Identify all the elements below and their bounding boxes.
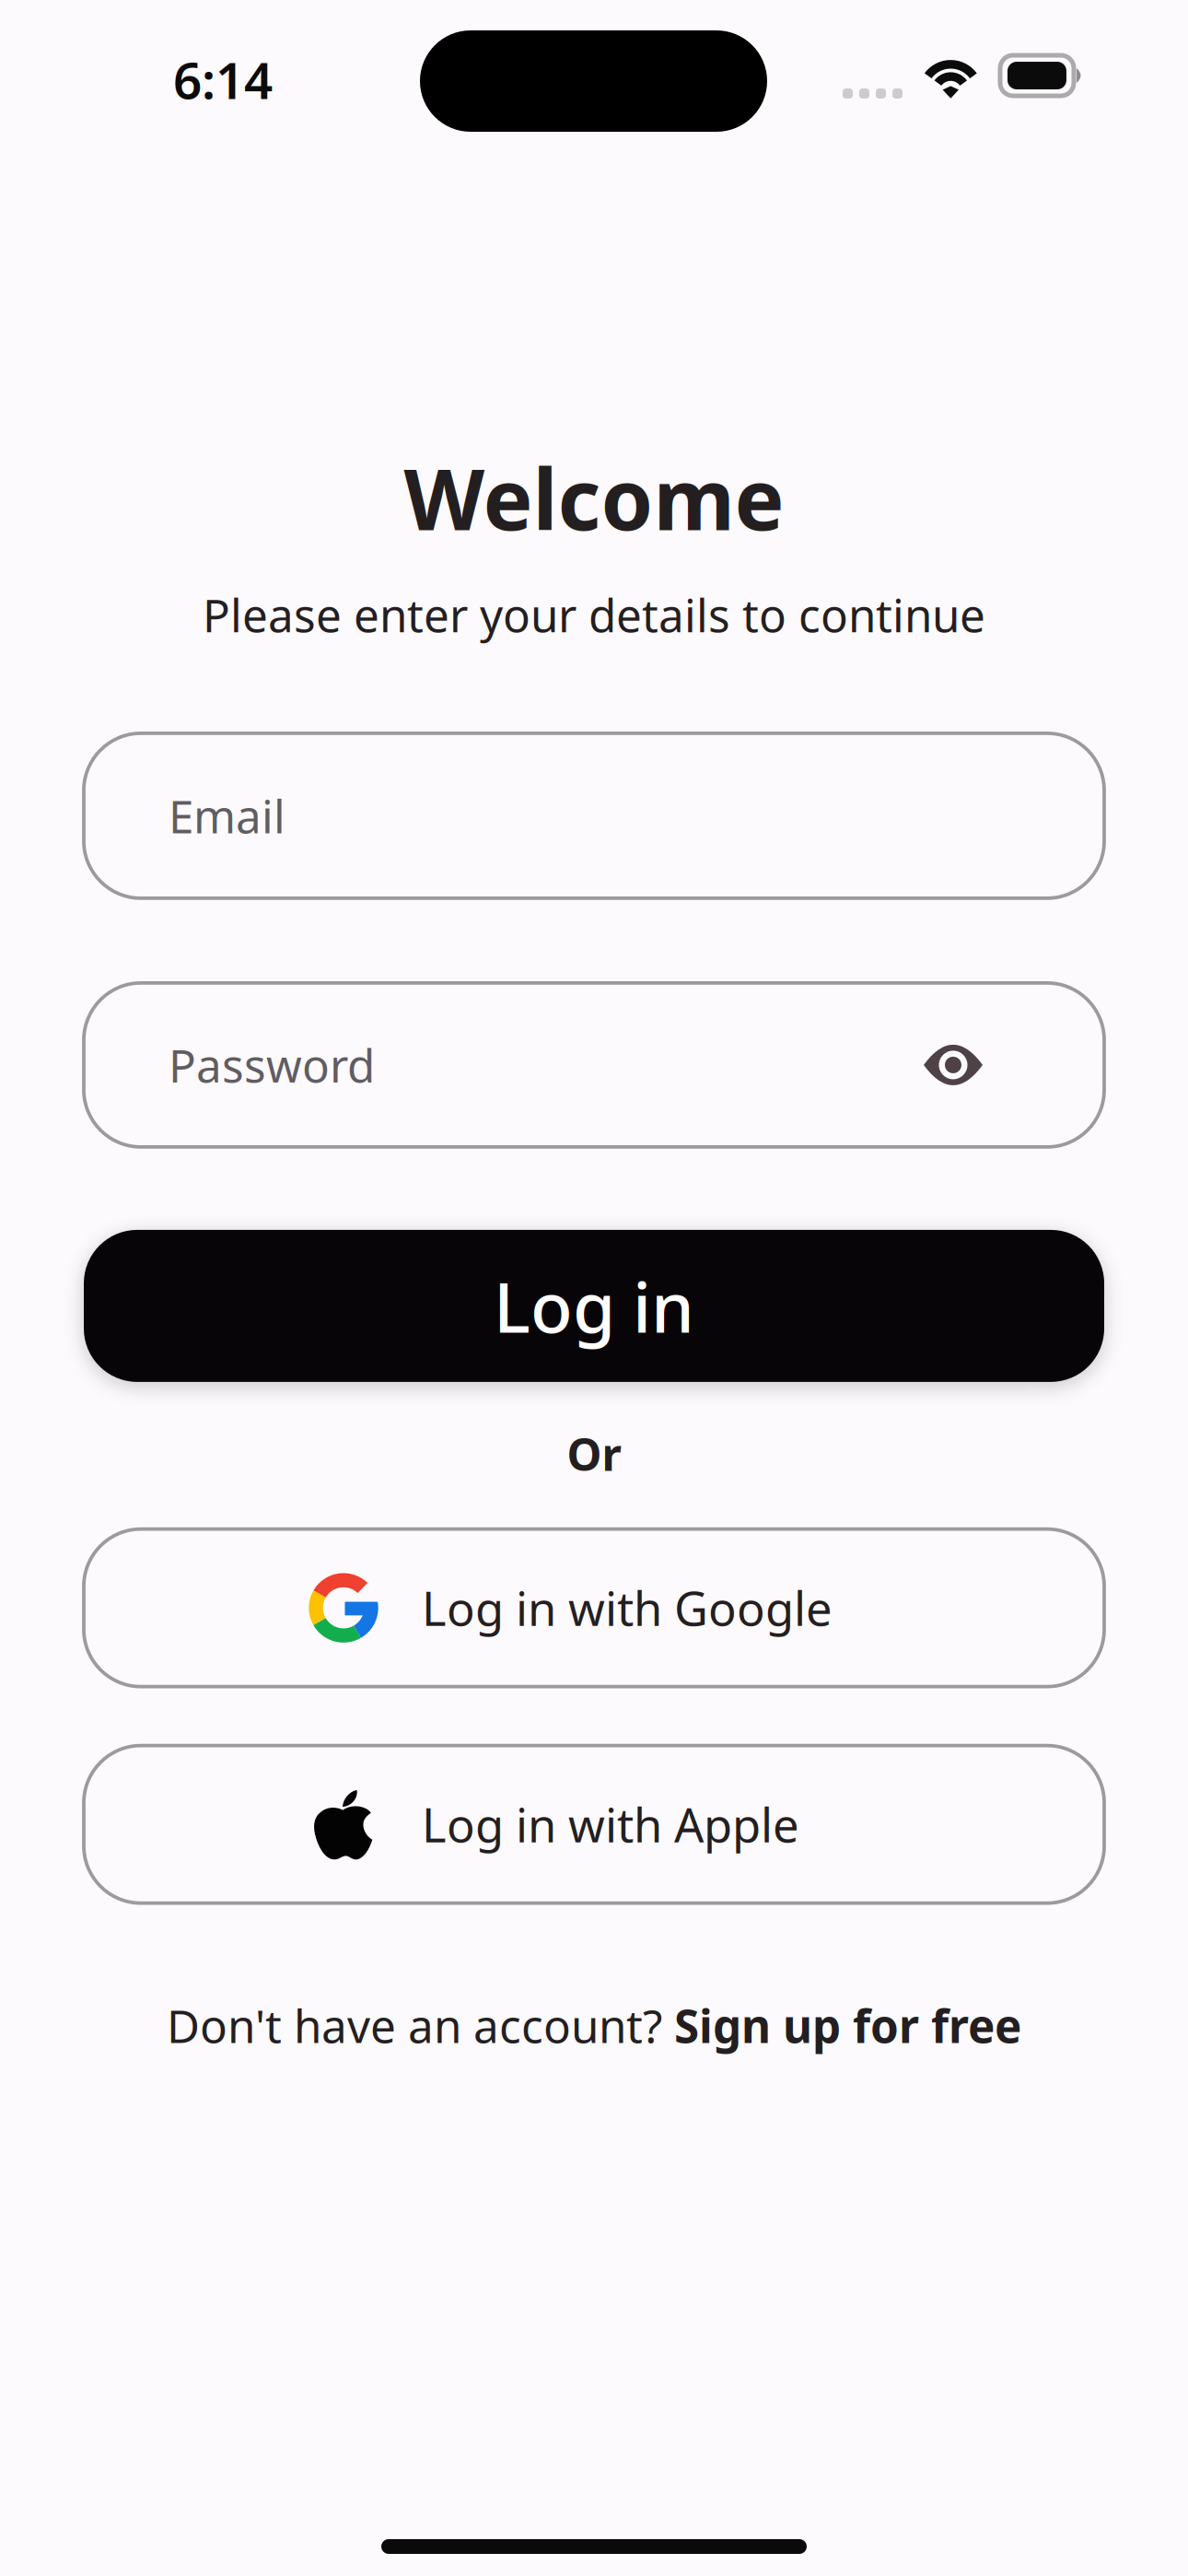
button[interactable]: Show password [923,1044,984,1086]
staticText: Don't have an account? [167,1995,674,2056]
button[interactable]: Log in with Apple [84,1746,1104,1903]
button[interactable]: Email [84,733,1104,898]
button[interactable]: Log in with Google [84,1529,1104,1687]
staticText: Log in with Google [422,1577,833,1639]
button[interactable]: Don't have an account? [167,1995,1021,2056]
staticText: Log in [494,1260,694,1352]
staticText: Sign up for free [674,1995,1021,2056]
staticText: Or [567,1424,621,1483]
staticText: 6:14 [173,46,273,113]
staticText: Please enter your details to continue [203,584,985,645]
button[interactable]: Password [84,983,1104,1147]
staticText: Log in with Apple [422,1793,799,1855]
staticText: Email [169,786,285,846]
staticText: Password [169,1035,375,1095]
staticText: Welcome [404,442,784,553]
button[interactable]: Log in [84,1230,1104,1382]
